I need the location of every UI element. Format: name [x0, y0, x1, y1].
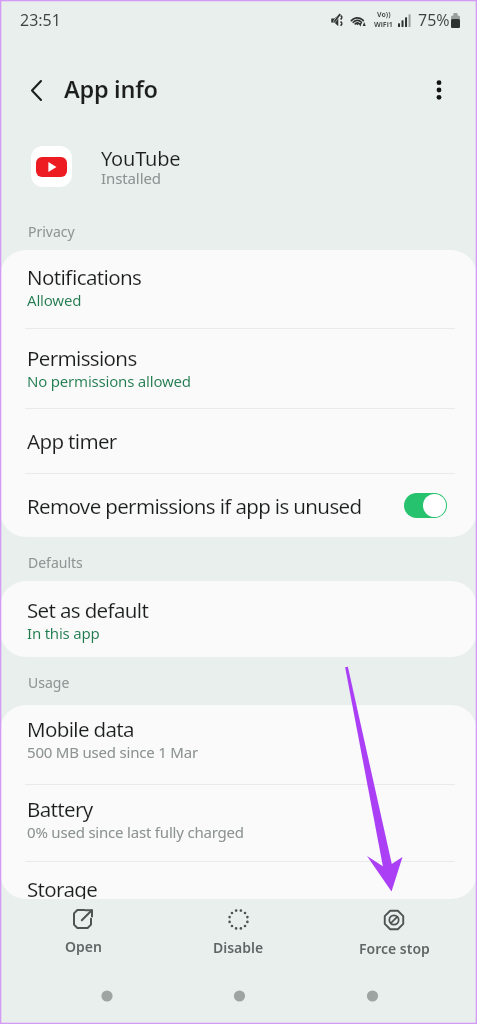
button[interactable]: Toggle [404, 493, 447, 518]
staticText: Battery [27, 795, 93, 823]
staticText: Allowed [27, 290, 82, 310]
staticText: Open [65, 937, 102, 956]
staticText: App timer [27, 427, 117, 455]
staticText: Remove permissions if app is unused [27, 492, 362, 520]
staticText: No permissions allowed [27, 371, 191, 391]
staticText: Privacy [28, 222, 75, 241]
staticText: In this app [27, 623, 100, 643]
staticText: 23:51 [20, 9, 61, 31]
staticText: Vo)) [377, 10, 391, 20]
button[interactable]: App timer [0, 409, 477, 473]
staticText: Disable [213, 938, 264, 957]
button[interactable]: Force stop app [324, 900, 464, 958]
staticText: WiFi1 [374, 20, 393, 30]
button[interactable]: Remove permissions if app is unused [0, 474, 477, 537]
staticText: Usage [28, 673, 70, 692]
staticText: 500 MB used since 1 Mar [27, 742, 198, 762]
button[interactable]: Set as default [0, 581, 477, 657]
staticText: 0% used since last fully charged [27, 822, 244, 842]
button[interactable]: Open app [13, 900, 153, 956]
staticText: Notifications [27, 263, 142, 291]
button[interactable]: Disable app [168, 900, 308, 957]
button[interactable]: Mobile data [0, 705, 477, 784]
staticText: Set as default [27, 596, 149, 624]
staticText: Storage [27, 875, 98, 899]
staticText: Installed [101, 168, 161, 188]
staticText: Permissions [27, 344, 137, 372]
button[interactable]: Permissions [0, 329, 477, 408]
staticText: Mobile data [27, 715, 134, 743]
button[interactable]: Navigate up [19, 73, 53, 107]
button[interactable]: Storage [0, 862, 477, 899]
staticText: YouTube [101, 145, 181, 172]
button[interactable]: Battery [0, 785, 477, 861]
staticText: 75% [418, 9, 450, 31]
staticText: Defaults [28, 553, 83, 572]
staticText: Force stop [359, 939, 430, 958]
staticText: App info [64, 73, 158, 105]
button[interactable]: Notifications [0, 250, 477, 328]
button[interactable]: More options [422, 73, 456, 107]
